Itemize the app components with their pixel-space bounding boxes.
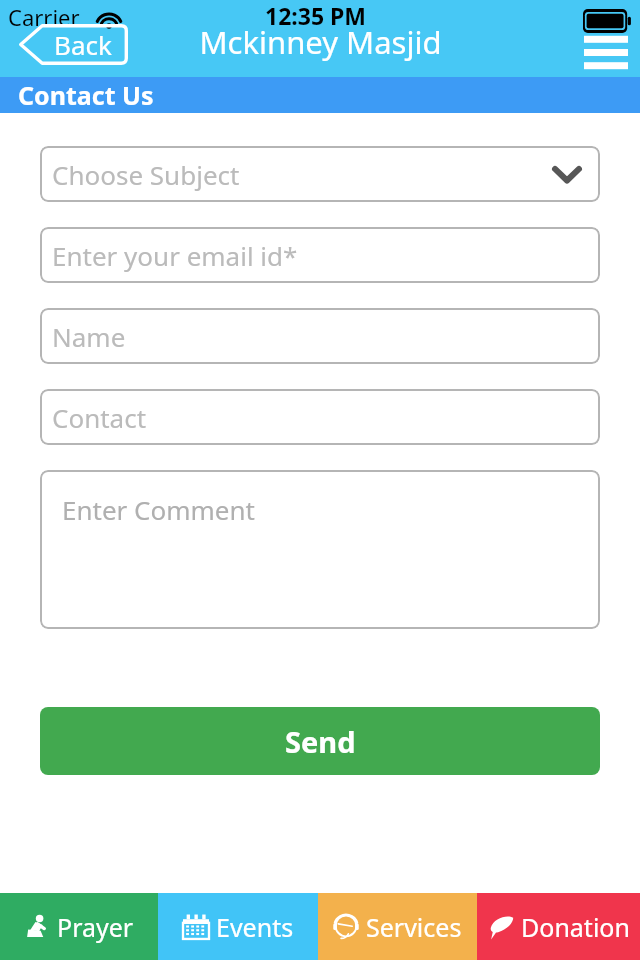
staticText: Events: [216, 910, 294, 944]
button[interactable]: Contact: [40, 389, 600, 445]
staticText: Name: [52, 319, 126, 354]
staticText: Mckinney Masjid: [199, 21, 442, 63]
staticText: Enter your email id*: [52, 238, 298, 273]
staticText: Send: [285, 722, 356, 761]
button[interactable]: Name: [40, 308, 600, 364]
button[interactable]: Prayer: [0, 893, 158, 960]
staticText: Choose Subject: [52, 157, 240, 192]
button[interactable]: Services: [318, 893, 477, 960]
staticText: Carrier: [8, 2, 80, 32]
button[interactable]: Choose Subject: [40, 146, 600, 202]
staticText: Prayer: [57, 910, 134, 944]
staticText: Back: [54, 27, 112, 62]
staticText: Contact: [52, 400, 147, 435]
button[interactable]: Events: [158, 893, 318, 960]
staticText: Donation: [521, 910, 630, 944]
button[interactable]: Back: [18, 24, 128, 65]
button[interactable]: Donation: [477, 893, 640, 960]
staticText: Contact Us: [18, 78, 154, 112]
staticText: 12:35 PM: [265, 0, 367, 31]
button[interactable]: Send: [40, 707, 600, 775]
staticText: Enter Comment: [62, 492, 255, 527]
button[interactable]: Menu: [584, 31, 628, 71]
button[interactable]: Enter your email id*: [40, 227, 600, 283]
staticText: Services: [366, 910, 462, 944]
button[interactable]: Enter Comment: [40, 470, 600, 629]
